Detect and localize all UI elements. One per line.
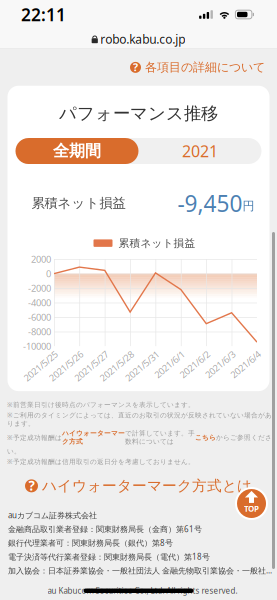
staticText: 各項目の詳細について [145, 60, 265, 75]
staticText: 累積ネット損益 [31, 195, 125, 211]
staticText: 全期間 [53, 141, 101, 161]
staticText: ? [28, 477, 34, 494]
staticText: パフォーマンス推移 [59, 103, 218, 124]
staticText: 2021/6/4 [227, 357, 263, 369]
staticText: au Kabucom Securities Co., Ltd. All righ… [47, 585, 237, 596]
staticText: -2000 [28, 282, 51, 294]
staticText: -9,450 [177, 188, 242, 218]
staticText: TOP [244, 503, 259, 514]
staticText: からご参照くださ [216, 433, 272, 441]
staticText: -4000 [28, 296, 51, 309]
staticText: ハイウォーターマーク方式 [62, 429, 125, 446]
staticText: ※前営業日引け後時点のパフォーマンスを表示しています。 [7, 400, 195, 409]
staticText: 銀行代理業者可：関東財務局長（銀代）第8号 [8, 538, 173, 548]
staticText: -6000 [28, 311, 51, 323]
staticText: ※ご利用のタイミングによっては、直近のお取引の状況が反映されていない場合がありま… [7, 411, 272, 428]
staticText: こちら [195, 433, 216, 441]
staticText: -8000 [28, 325, 51, 338]
staticText: 円 [242, 199, 254, 213]
staticText: 22:11 [21, 3, 66, 26]
staticText: い。 [7, 447, 21, 455]
button[interactable]: 全期間 [15, 138, 138, 164]
staticText: 2021/5/25 [19, 357, 60, 369]
staticText: 累積ネット損益 [118, 237, 195, 250]
staticText: 2021/5/28 [95, 357, 136, 369]
button[interactable]: ? [130, 57, 265, 78]
staticText: -10000 [23, 340, 51, 352]
staticText: 2000 [31, 253, 51, 265]
staticText: 電子決済等代行業者登録：関東財務局長（電代）第18号 [8, 551, 210, 562]
staticText: 2021/5/27 [70, 357, 111, 369]
button[interactable]: ? [25, 474, 252, 498]
staticText: 0 [46, 267, 51, 280]
staticText: で計算しています。手数料については [125, 429, 195, 446]
staticText: robo.kabu.co.jp [100, 31, 185, 47]
staticText: ※予定成功報酬は [7, 433, 62, 442]
staticText: 2021/6/3 [202, 357, 238, 369]
staticText: auカブコム証券株式会社 [8, 510, 97, 521]
staticText: ※予定成功報酬は信用取引の返日分を考慮しておりません。 [7, 457, 195, 466]
staticText: 加入協会：日本証券業協会・一般社団法人 金融先物取引業協会・一般社団法人 日本投… [8, 565, 277, 576]
button[interactable]: ページの先頭へ戻る [235, 487, 268, 520]
staticText: 2021 [182, 140, 218, 162]
staticText: ハイウォーターマーク方式とは [42, 477, 252, 495]
staticText: ? [133, 60, 138, 74]
staticText: 2021/6/1 [151, 357, 187, 369]
button[interactable]: 2021 [138, 138, 261, 164]
staticText: 2021/5/26 [44, 357, 85, 369]
staticText: 金融商品取引業者登録：関東財務局長（金商）第61号 [8, 524, 202, 534]
staticText: 2021/6/2 [176, 357, 212, 369]
staticText: 2021/5/31 [120, 357, 161, 369]
